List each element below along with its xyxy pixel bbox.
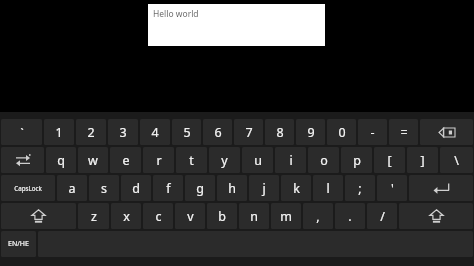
button[interactable]: 7 <box>234 119 263 145</box>
button[interactable]: y <box>209 147 240 173</box>
staticText: 8 <box>276 124 284 141</box>
staticText: u <box>254 152 262 169</box>
staticText: 7 <box>245 124 253 141</box>
button[interactable]: i <box>275 147 306 173</box>
button[interactable]: , <box>303 203 333 229</box>
button[interactable]: / <box>367 203 397 229</box>
button[interactable]: q <box>46 147 76 173</box>
staticText: k <box>293 180 300 197</box>
button[interactable]: b <box>207 203 237 229</box>
button[interactable]: Hello world <box>148 4 325 46</box>
staticText: EN/HE <box>8 239 29 249</box>
button[interactable]: = <box>389 119 418 145</box>
staticText: 2 <box>87 124 95 141</box>
staticText: ' <box>391 180 394 197</box>
button[interactable]: CapsLock <box>1 175 55 201</box>
staticText: 4 <box>151 124 159 141</box>
button[interactable]: s <box>89 175 119 201</box>
staticText: y <box>221 152 228 169</box>
staticText: 1 <box>55 124 63 141</box>
staticText: c <box>155 208 162 225</box>
staticText: Hello world <box>153 8 199 20</box>
staticText: f <box>166 180 171 197</box>
button[interactable]: j <box>249 175 279 201</box>
staticText: 3 <box>119 124 127 141</box>
staticText: p <box>353 152 361 169</box>
staticText: g <box>196 180 204 197</box>
button[interactable]: x <box>111 203 141 229</box>
button[interactable]: ] <box>407 147 438 173</box>
button[interactable]: 5 <box>172 119 201 145</box>
button[interactable]: 0 <box>327 119 356 145</box>
staticText: l <box>326 180 330 197</box>
button[interactable]: Enter <box>409 175 473 201</box>
staticText: b <box>218 208 226 225</box>
button[interactable]: n <box>239 203 269 229</box>
button[interactable]: Switch language <box>1 231 36 257</box>
staticText: s <box>101 180 107 197</box>
staticText: e <box>122 152 130 169</box>
button[interactable]: . <box>335 203 365 229</box>
button[interactable]: 9 <box>296 119 325 145</box>
button[interactable]: h <box>217 175 247 201</box>
staticText: [ <box>387 152 392 169</box>
button[interactable]: 1 <box>44 119 74 145</box>
button[interactable]: d <box>121 175 151 201</box>
staticText: = <box>400 124 408 141</box>
staticText: j <box>262 180 266 197</box>
button[interactable]: v <box>175 203 205 229</box>
staticText: a <box>68 180 76 197</box>
staticText: 6 <box>214 124 222 141</box>
staticText: d <box>132 180 140 197</box>
staticText: o <box>320 152 328 169</box>
staticText: t <box>189 152 194 169</box>
button[interactable]: Shift <box>1 203 76 229</box>
staticText: r <box>156 152 162 169</box>
staticText: h <box>228 180 236 197</box>
button[interactable]: t <box>176 147 207 173</box>
button[interactable]: Tab <box>1 147 44 173</box>
staticText: / <box>380 208 385 225</box>
button[interactable]: ; <box>345 175 375 201</box>
button[interactable]: 2 <box>76 119 106 145</box>
button[interactable]: w <box>78 147 108 173</box>
button[interactable]: \ <box>440 147 473 173</box>
staticText: 5 <box>183 124 191 141</box>
staticText: x <box>123 208 130 225</box>
staticText: \ <box>454 152 459 169</box>
button[interactable]: - <box>358 119 387 145</box>
button[interactable]: k <box>281 175 311 201</box>
staticText: w <box>88 152 98 169</box>
button[interactable]: ' <box>377 175 407 201</box>
staticText: ` <box>20 125 24 140</box>
staticText: . <box>348 208 352 225</box>
staticText: q <box>57 152 65 169</box>
button[interactable]: u <box>242 147 273 173</box>
button[interactable]: 4 <box>140 119 170 145</box>
button[interactable]: l <box>313 175 343 201</box>
button[interactable]: e <box>110 147 141 173</box>
button[interactable]: m <box>271 203 301 229</box>
button[interactable]: [ <box>374 147 405 173</box>
button[interactable]: f <box>153 175 183 201</box>
staticText: v <box>187 208 194 225</box>
staticText: n <box>250 208 258 225</box>
button[interactable]: a <box>57 175 87 201</box>
button[interactable]: 6 <box>203 119 232 145</box>
button[interactable]: 8 <box>265 119 294 145</box>
staticText: 9 <box>307 124 315 141</box>
staticText: 0 <box>338 124 346 141</box>
button[interactable]: 3 <box>108 119 138 145</box>
staticText: ; <box>358 180 362 197</box>
button[interactable]: p <box>341 147 372 173</box>
button[interactable]: g <box>185 175 215 201</box>
button[interactable]: c <box>143 203 173 229</box>
button[interactable]: Backspace <box>420 119 473 145</box>
button[interactable]: ` <box>1 119 42 145</box>
button[interactable]: z <box>78 203 109 229</box>
button[interactable]: Shift <box>399 203 473 229</box>
button[interactable]: r <box>143 147 174 173</box>
button[interactable]: o <box>308 147 339 173</box>
staticText: , <box>316 208 320 225</box>
